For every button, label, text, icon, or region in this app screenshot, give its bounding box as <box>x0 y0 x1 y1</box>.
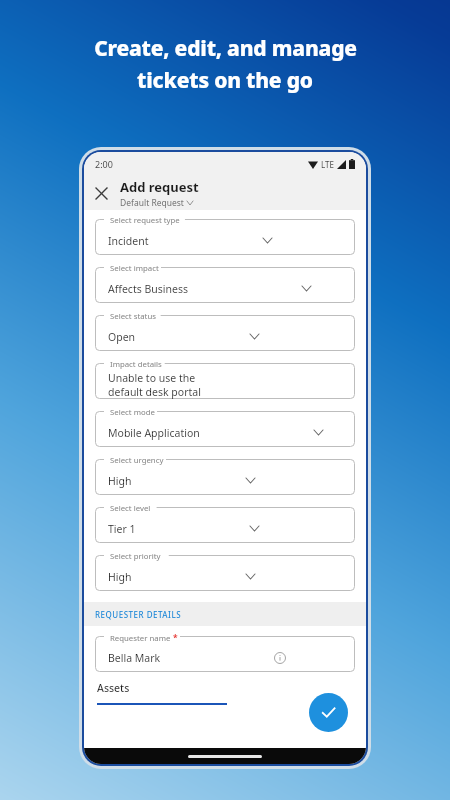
button[interactable]: Default Request <box>120 197 193 209</box>
button[interactable]: Select impact <box>95 267 355 303</box>
button[interactable]: Select status <box>95 315 355 351</box>
staticText: Open <box>108 330 136 344</box>
button[interactable]: Submit request <box>309 693 348 732</box>
staticText: Unable to use the default desk portal <box>108 371 226 399</box>
staticText: Select status <box>110 311 156 322</box>
staticText: Bella Mark <box>108 651 161 665</box>
staticText: tickets on the go <box>137 66 313 95</box>
button[interactable]: Select mode <box>95 411 355 447</box>
button[interactable]: More information <box>272 650 287 665</box>
button[interactable]: Requester name <box>95 636 355 672</box>
staticText: LTE <box>321 159 334 170</box>
staticText: Select impact <box>110 263 159 274</box>
staticText: Incident <box>108 234 149 248</box>
staticText: Affects Business <box>108 282 188 296</box>
button[interactable]: Impact details <box>95 363 355 399</box>
staticText: Select request type <box>110 215 180 226</box>
staticText: High <box>108 570 132 584</box>
staticText: * <box>173 632 178 644</box>
staticText: Impact details <box>110 359 162 370</box>
button[interactable]: Select level <box>95 507 355 543</box>
staticText: 2:00 <box>95 158 113 170</box>
staticText: High <box>108 474 132 488</box>
staticText: REQUESTER DETAILS <box>95 609 182 620</box>
staticText: Tier 1 <box>108 522 136 536</box>
staticText: Assets <box>97 681 130 695</box>
staticText: Select level <box>110 503 151 514</box>
staticText: Mobile Application <box>108 426 200 440</box>
staticText: Requester name <box>110 633 171 644</box>
button[interactable]: Select priority <box>95 555 355 591</box>
staticText: Select priority <box>110 551 161 562</box>
staticText: Create, edit, and manage <box>94 34 357 63</box>
button[interactable]: Close <box>84 176 118 210</box>
staticText: Select urgency <box>110 455 164 466</box>
button[interactable]: Select urgency <box>95 459 355 495</box>
staticText: Default Request <box>120 197 184 209</box>
staticText: Select mode <box>110 407 155 418</box>
button[interactable]: Select request type <box>95 219 355 255</box>
staticText: Add request <box>120 178 199 196</box>
